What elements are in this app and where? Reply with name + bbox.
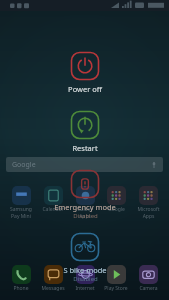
button[interactable]: Galaxy Apps bbox=[70, 186, 100, 219]
button[interactable]: Play Store bbox=[101, 265, 131, 292]
staticText: Galaxy Apps bbox=[77, 206, 93, 219]
staticText: Restart bbox=[72, 143, 98, 153]
staticText: Messages bbox=[41, 285, 65, 292]
button[interactable]: Microsoft Apps bbox=[133, 186, 163, 219]
button[interactable]: Google search bbox=[6, 157, 163, 172]
staticText: Play Store bbox=[104, 285, 128, 292]
button[interactable]: Restart bbox=[40, 107, 130, 154]
staticText: Internet bbox=[75, 285, 95, 292]
staticText: Phone bbox=[13, 285, 29, 292]
button[interactable]: Emergency mode bbox=[40, 166, 130, 221]
button[interactable]: Messages bbox=[38, 265, 68, 292]
staticText: S bike mode bbox=[63, 265, 107, 275]
staticText: Power off bbox=[68, 84, 102, 94]
staticText: Camera bbox=[139, 285, 158, 292]
button[interactable]: Power off bbox=[40, 48, 130, 95]
staticText: Disabled bbox=[73, 275, 98, 283]
button[interactable]: Phone bbox=[6, 265, 36, 292]
button[interactable]: Calendar bbox=[38, 186, 68, 213]
staticText: Google bbox=[108, 206, 125, 213]
staticText: Calendar bbox=[42, 206, 64, 213]
staticText: Google bbox=[12, 160, 36, 170]
button[interactable]: Internet bbox=[70, 265, 100, 292]
button[interactable]: Google bbox=[101, 186, 131, 213]
staticText: Microsoft Apps bbox=[137, 206, 160, 219]
button[interactable]: Samsung Pay Mini bbox=[6, 186, 36, 219]
button[interactable]: S bike mode bbox=[40, 229, 130, 284]
staticText: Disabled bbox=[73, 212, 98, 220]
staticText: Emergency mode bbox=[54, 202, 116, 212]
button[interactable]: Camera bbox=[133, 265, 163, 292]
staticText: Samsung Pay Mini bbox=[10, 206, 32, 219]
